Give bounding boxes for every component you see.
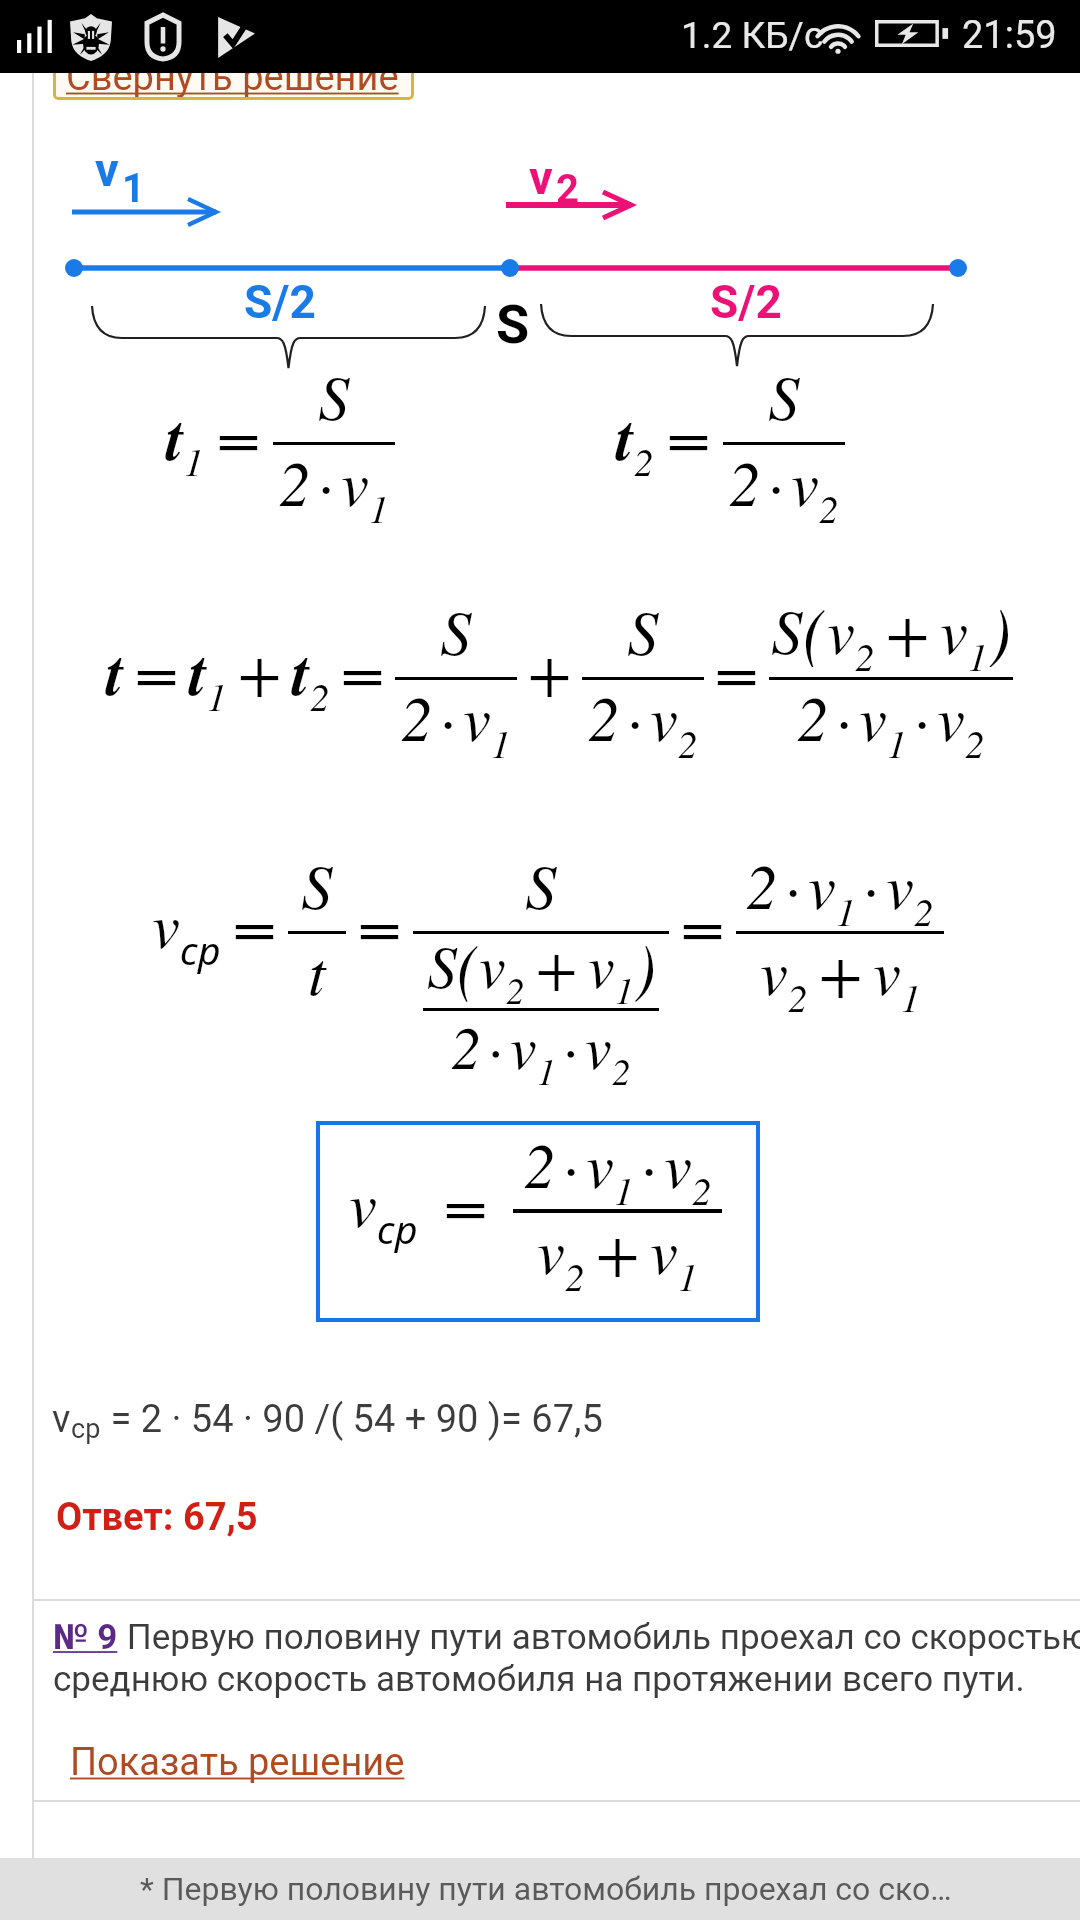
staticText: v	[510, 1005, 537, 1085]
other: Wi-Fi	[812, 16, 864, 55]
staticText: 2	[746, 842, 778, 926]
staticText: v	[791, 439, 819, 523]
staticText: t	[308, 928, 326, 1012]
staticText: 1	[615, 964, 634, 1014]
staticText: ·	[863, 842, 879, 926]
staticText: 1	[887, 716, 907, 768]
staticText: v	[537, 1207, 565, 1291]
staticText: t	[166, 392, 184, 481]
staticText: +	[528, 627, 571, 711]
staticText: +	[819, 928, 862, 1012]
staticText: v	[52, 1397, 71, 1442]
staticText: v	[585, 1005, 612, 1085]
other: Play store	[217, 17, 255, 58]
staticText: S	[525, 842, 557, 926]
staticText: =	[681, 881, 724, 965]
staticText: 2	[612, 1045, 631, 1095]
staticText: S/2	[244, 275, 316, 329]
staticText: +	[886, 587, 929, 671]
staticText: +	[536, 924, 577, 1004]
staticText: t	[106, 627, 124, 716]
staticText: v	[152, 881, 180, 965]
staticText: v	[588, 924, 615, 1004]
staticText: 1	[491, 716, 511, 768]
staticText: 1	[968, 629, 988, 681]
staticText: S	[771, 587, 803, 671]
staticText: Ответ: 67,5	[56, 1495, 258, 1540]
staticText: v	[886, 842, 914, 926]
staticText: * Первую половину пути автомобиль проеха…	[140, 1870, 952, 1908]
staticText: v	[650, 674, 678, 758]
staticText: ·	[563, 1005, 578, 1085]
staticText: = 2 · 54 · 90 /( 54 + 90 )= 67,5	[101, 1397, 603, 1442]
staticText: =	[444, 1160, 487, 1244]
staticText: 2	[310, 669, 330, 721]
staticText: S	[496, 293, 530, 356]
staticText: S/2	[710, 275, 782, 329]
staticText: +	[596, 1207, 639, 1291]
staticText: 2	[524, 1121, 556, 1205]
staticText: =	[358, 881, 401, 965]
staticText: Свернуть решение	[66, 55, 399, 100]
button[interactable]: * Первую половину пути автомобиль проеха…	[0, 1858, 1080, 1920]
staticText: 1	[836, 884, 856, 936]
staticText: ·	[627, 674, 643, 758]
button[interactable]: Показать решение	[70, 1740, 405, 1785]
staticText: =	[667, 392, 710, 476]
other: Battery charging	[875, 20, 946, 47]
staticText: v	[95, 142, 119, 197]
staticText: ·	[836, 674, 852, 758]
staticText: 2	[588, 674, 620, 758]
staticText: среднюю скорость автомобиля на протяжени…	[53, 1659, 1025, 1700]
staticText: 2	[819, 481, 839, 533]
staticText: S	[318, 353, 350, 437]
staticText: ·	[563, 1121, 579, 1205]
staticText: 2	[729, 439, 761, 523]
staticText: Первую половину пути автомобиль проехал …	[118, 1617, 1080, 1658]
staticText: 2	[556, 166, 579, 213]
staticText: 2	[788, 970, 808, 1022]
staticText: 1	[369, 481, 389, 533]
staticText: v	[463, 674, 491, 758]
staticText: )	[988, 582, 1012, 667]
staticText: t	[616, 392, 634, 481]
staticText: =	[135, 627, 178, 711]
staticText: )	[634, 919, 656, 1003]
staticText: ·	[440, 674, 456, 758]
staticText: ср	[180, 923, 221, 976]
staticText: ·	[785, 842, 801, 926]
staticText: 21:59	[962, 13, 1057, 58]
staticText: 1	[184, 434, 204, 486]
staticText: v	[873, 928, 901, 1012]
staticText: 2	[451, 1005, 481, 1085]
other: Antivirus	[70, 14, 112, 61]
staticText: v	[586, 1121, 614, 1205]
staticText: 2	[565, 1249, 585, 1301]
staticText: Показать решение	[70, 1740, 405, 1785]
staticText: 1.2 КБ/с	[681, 14, 824, 57]
staticText: +	[238, 627, 281, 711]
staticText: 1	[614, 1163, 634, 1215]
staticText: 2	[797, 674, 829, 758]
staticText: v	[664, 1121, 692, 1205]
staticText: № 9	[53, 1617, 118, 1658]
staticText: ·	[768, 439, 784, 523]
other: Signal strength	[14, 16, 56, 58]
staticText: ср	[377, 1202, 418, 1255]
button[interactable]: Свернуть решение	[53, 30, 414, 100]
staticText: v	[859, 674, 887, 758]
staticText: =	[715, 627, 758, 711]
staticText: =	[341, 627, 384, 711]
staticText: 1	[537, 1045, 556, 1095]
staticText: 2	[914, 884, 934, 936]
staticText: 2	[855, 629, 875, 681]
staticText: v	[760, 928, 788, 1012]
staticText: v	[529, 150, 553, 205]
staticText: v	[341, 439, 369, 523]
staticText: v	[937, 674, 965, 758]
staticText: v	[827, 587, 855, 671]
staticText: t	[189, 627, 207, 716]
staticText: 2	[678, 716, 698, 768]
staticText: 1	[901, 970, 921, 1022]
other: Security warning	[144, 12, 182, 62]
